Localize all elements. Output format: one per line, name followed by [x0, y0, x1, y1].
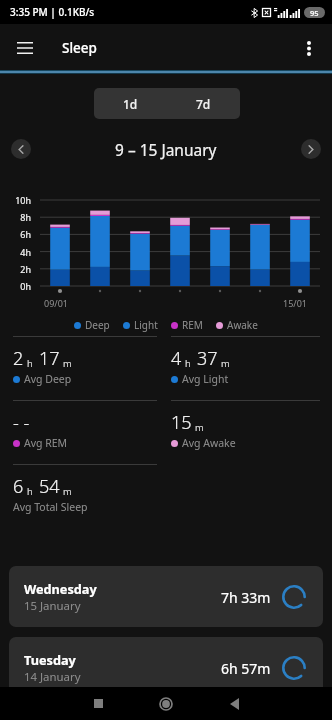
- staticText: 37: [197, 346, 218, 371]
- staticText: Tuesday: [24, 651, 76, 668]
- staticText: 0h: [0, 280, 31, 292]
- staticText: - -: [13, 410, 30, 435]
- staticText: Wednesday: [24, 580, 97, 597]
- staticText: 14 January: [24, 669, 81, 685]
- button[interactable]: 7d: [167, 88, 240, 119]
- staticText: 15: [171, 410, 192, 435]
- staticText: 8h: [0, 211, 31, 223]
- staticText: h: [27, 357, 33, 370]
- staticText: Awake: [227, 318, 258, 332]
- staticText: 17: [39, 346, 60, 371]
- staticText: 6h: [0, 228, 31, 240]
- staticText: 6h 57m: [221, 659, 271, 678]
- staticText: Light: [134, 318, 158, 332]
- staticText: 9 – 15 January: [115, 139, 217, 160]
- staticText: 3:35 PM | 0.1KB/s: [10, 5, 95, 19]
- staticText: h: [27, 485, 33, 498]
- staticText: 4h: [0, 246, 31, 258]
- staticText: m: [63, 357, 72, 370]
- staticText: 1d: [123, 96, 138, 112]
- button[interactable]: Tuesday: [9, 637, 323, 698]
- button[interactable]: Open navigation menu: [6, 29, 44, 67]
- button[interactable]: More options: [290, 29, 328, 67]
- button[interactable]: 1d: [94, 88, 167, 119]
- staticText: 7h 33m: [221, 588, 271, 607]
- staticText: Avg Total Sleep: [13, 500, 88, 514]
- staticText: Sleep: [62, 39, 97, 57]
- staticText: 09/01: [44, 297, 68, 309]
- staticText: 54: [39, 474, 60, 499]
- button[interactable]: Back: [214, 687, 254, 720]
- staticText: 7d: [196, 96, 211, 112]
- staticText: Deep: [85, 318, 110, 332]
- staticText: m: [195, 421, 204, 434]
- staticText: 4: [171, 346, 182, 371]
- staticText: Avg Awake: [182, 436, 236, 450]
- button[interactable]: Home: [146, 687, 186, 720]
- staticText: 2: [13, 346, 24, 371]
- button[interactable]: Wednesday: [9, 566, 323, 627]
- staticText: m: [63, 485, 72, 498]
- staticText: Avg REM: [24, 436, 68, 450]
- button[interactable]: Recent apps: [78, 687, 118, 720]
- staticText: h: [185, 357, 191, 370]
- button[interactable]: Previous week: [11, 139, 31, 159]
- staticText: 15 January: [24, 598, 81, 614]
- staticText: 95: [310, 8, 319, 18]
- staticText: Avg Light: [182, 372, 229, 386]
- staticText: 10h: [0, 194, 31, 206]
- staticText: m: [221, 357, 230, 370]
- button[interactable]: Next week: [301, 139, 321, 159]
- staticText: Avg Deep: [24, 372, 72, 386]
- staticText: 2h: [0, 263, 31, 275]
- staticText: 6: [13, 474, 24, 499]
- staticText: 15/01: [283, 297, 307, 309]
- staticText: REM: [182, 318, 203, 332]
